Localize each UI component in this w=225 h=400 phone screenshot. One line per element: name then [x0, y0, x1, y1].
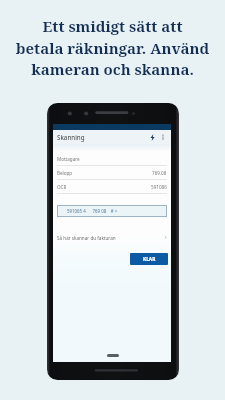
staticText: KLAR [143, 256, 156, 263]
button[interactable]: Så här skannar du fakturan [53, 231, 171, 244]
button[interactable]: Mottagare [53, 152, 171, 165]
button[interactable]: Fler alternativ [158, 132, 168, 142]
staticText: 591086 [151, 184, 167, 190]
staticText: OCR [57, 184, 67, 190]
staticText: Skanning [57, 133, 85, 141]
button[interactable]: OCR [53, 180, 171, 193]
staticText: Mottagare [57, 156, 80, 162]
staticText: Ett smidigt sätt att betala räkningar. A… [8, 16, 217, 79]
staticText: 769.08 [152, 170, 167, 176]
staticText: Så här skannar du fakturan [57, 235, 116, 241]
button[interactable]: Belopp [53, 166, 171, 179]
button[interactable]: Blixt [147, 132, 157, 142]
button[interactable]: KLAR [130, 253, 168, 265]
staticText: Belopp [57, 170, 73, 176]
staticText: 591065 4 769 08 # > [67, 208, 118, 214]
